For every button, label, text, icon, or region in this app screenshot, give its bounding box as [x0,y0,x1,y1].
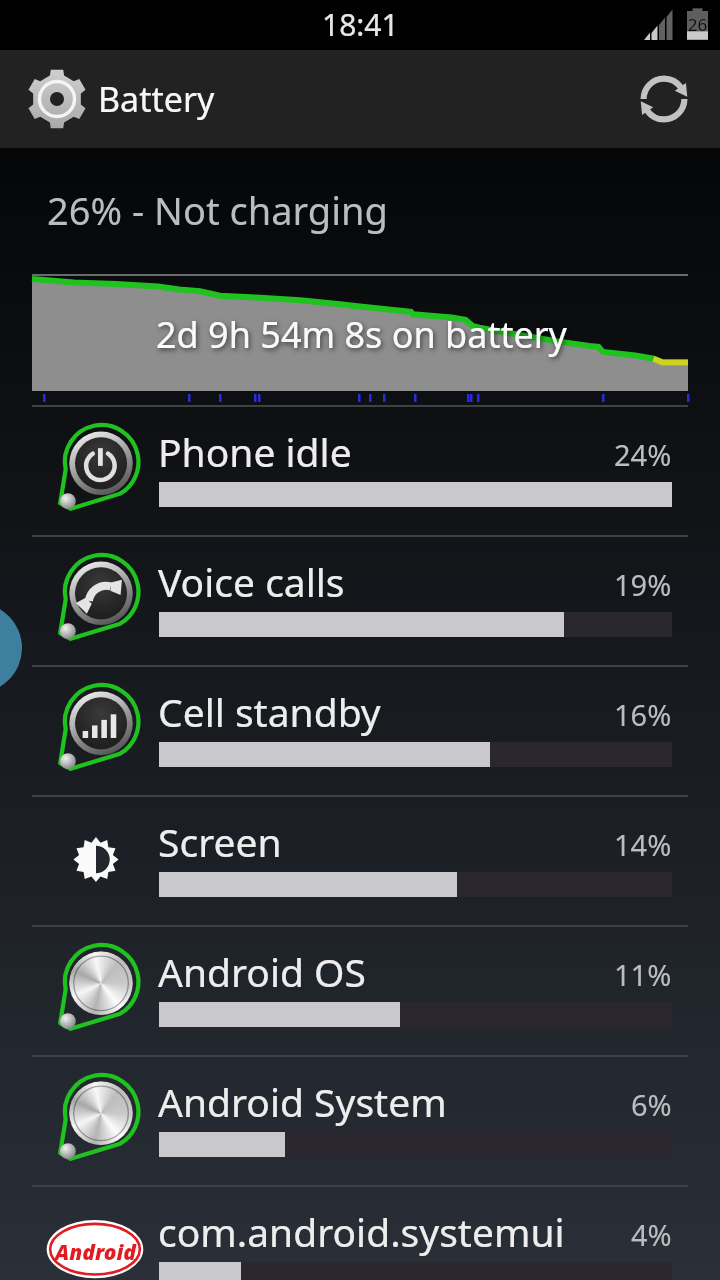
staticText: Screen [158,815,282,868]
staticText: Android System [158,1075,447,1128]
staticText: 11% [614,955,672,994]
staticText: 16% [614,695,672,734]
staticText: 4% [631,1215,672,1254]
staticText: com.android.systemui [158,1205,565,1258]
staticText: 2d 9h 54m 8s on battery [156,310,567,359]
staticText: 18:41 [322,4,399,45]
staticText: 26% - Not charging [47,184,388,236]
staticText: Cell standby [158,685,381,738]
button[interactable]: Voice calls [0,537,720,667]
staticText: Android OS [158,945,366,998]
staticText: 24% [614,435,672,474]
staticText: 6% [631,1085,672,1124]
button[interactable]: Android System [0,1057,720,1187]
button[interactable]: Android OS [0,927,720,1057]
staticText: Voice calls [158,555,345,608]
staticText: Battery [98,76,215,122]
button[interactable]: Phone idle [0,407,720,537]
button[interactable]: Cell standby [0,667,720,797]
staticText: 26 [687,13,708,36]
button[interactable]: Screen [0,797,720,927]
button[interactable]: Android [0,1187,720,1280]
staticText: 19% [614,565,672,604]
staticText: Phone idle [158,425,352,478]
staticText: Android [55,1238,136,1267]
staticText: 14% [614,825,672,864]
button[interactable]: Refresh [624,51,704,147]
